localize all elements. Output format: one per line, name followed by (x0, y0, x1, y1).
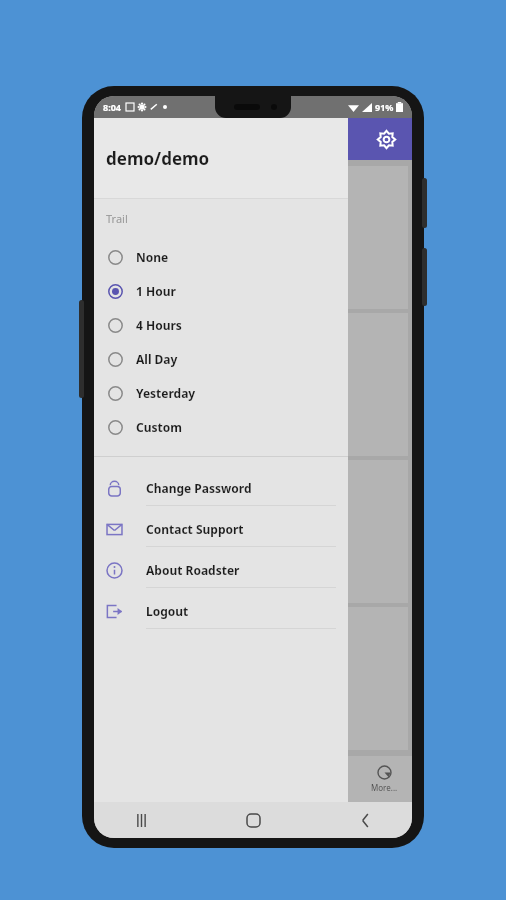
button[interactable]: Logout (94, 594, 348, 628)
button[interactable]: Recents (124, 803, 158, 837)
staticText: 1 Hour (136, 283, 176, 299)
staticText: demo/demo (106, 147, 210, 170)
button[interactable]: About Roadster (94, 553, 348, 587)
staticText: Custom (136, 419, 182, 435)
button[interactable] (98, 460, 408, 603)
staticText: 8:04 (103, 101, 121, 113)
staticText: 4 Hours (136, 317, 182, 333)
button[interactable]: 1 Hour (94, 274, 348, 308)
staticText: None (136, 249, 169, 265)
staticText: Contact Support (146, 521, 244, 537)
staticText: Yesterday (136, 385, 196, 401)
button[interactable] (98, 607, 408, 750)
staticText: 91% (375, 101, 394, 113)
button[interactable]: Contact Support (94, 512, 348, 546)
staticText: All Day (136, 351, 178, 367)
button[interactable]: 4 Hours (94, 308, 348, 342)
button[interactable]: Change Password (94, 471, 348, 505)
button[interactable]: Settings (370, 123, 402, 155)
staticText: More... (371, 782, 398, 793)
staticText: Logout (146, 603, 189, 619)
button[interactable]: Home (236, 803, 270, 837)
staticText: About Roadster (146, 562, 240, 578)
button[interactable] (98, 166, 408, 309)
button[interactable]: Back (348, 803, 382, 837)
button[interactable]: Yesterday (94, 376, 348, 410)
button[interactable]: None (94, 240, 348, 274)
button[interactable]: All Day (94, 342, 348, 376)
staticText: Trail (106, 211, 128, 226)
button[interactable]: Custom (94, 410, 348, 444)
staticText: Change Password (146, 480, 252, 496)
button[interactable] (98, 313, 408, 456)
button[interactable]: More... (371, 765, 398, 793)
